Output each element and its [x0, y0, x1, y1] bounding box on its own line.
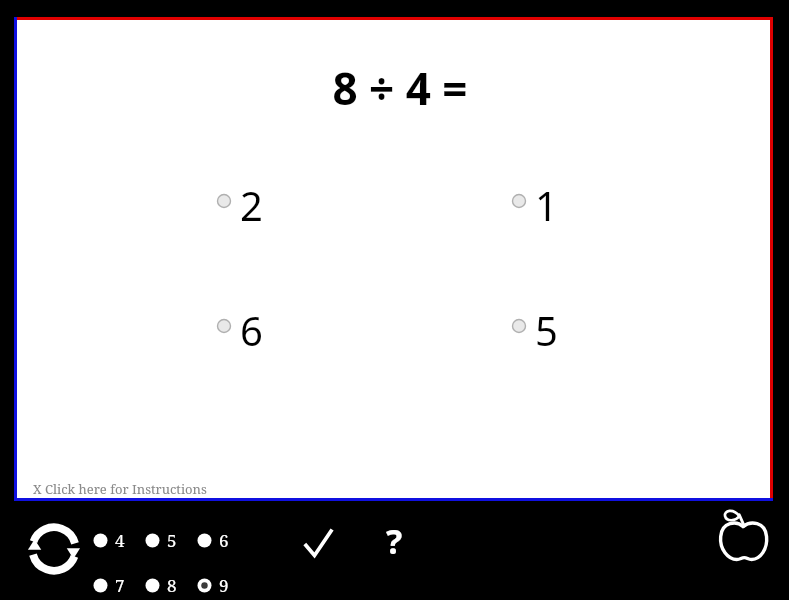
button[interactable]: 8 [145, 573, 191, 599]
staticText: 6 [240, 303, 263, 355]
staticText: 4 [115, 529, 125, 552]
staticText: 5 [167, 529, 177, 552]
button[interactable]: 5 [145, 528, 191, 554]
button[interactable]: Check answer [296, 522, 340, 566]
button[interactable]: New question [20, 515, 88, 583]
staticText: 1 [535, 178, 558, 230]
button[interactable]: 6 [214, 303, 304, 355]
button[interactable]: 9 [197, 573, 243, 599]
button[interactable]: X Click here for Instructions [33, 478, 228, 500]
staticText: 8 [167, 574, 177, 597]
button[interactable]: Help [374, 518, 414, 558]
button[interactable]: 2 [214, 178, 304, 230]
button[interactable]: 5 [509, 303, 599, 355]
staticText: 9 [219, 574, 229, 597]
button[interactable]: Apple [712, 508, 774, 570]
staticText: ? [386, 518, 403, 558]
button[interactable]: 7 [93, 573, 139, 599]
staticText: 7 [115, 574, 125, 597]
button[interactable]: 6 [197, 528, 243, 554]
staticText: 6 [219, 529, 229, 552]
staticText: 5 [535, 303, 558, 355]
staticText: X Click here for Instructions [33, 480, 207, 498]
button[interactable]: 4 [93, 528, 139, 554]
staticText: 2 [240, 178, 263, 230]
staticText: 8 ÷ 4 = [290, 58, 510, 118]
button[interactable]: 1 [509, 178, 599, 230]
